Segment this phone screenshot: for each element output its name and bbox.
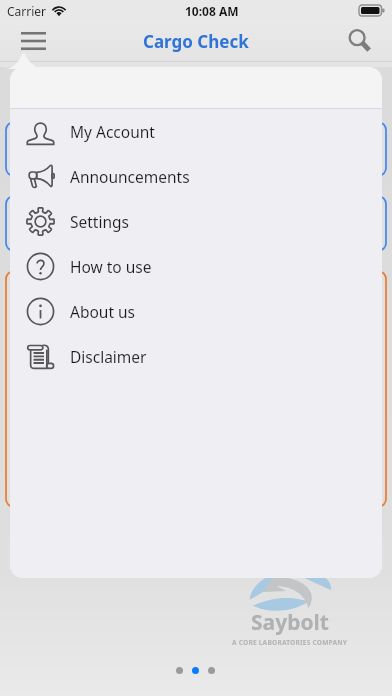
staticText: Cargo Check — [143, 30, 249, 53]
staticText: Carrier — [7, 3, 47, 19]
staticText: A CORE LABORATORIES COMPANY — [232, 638, 348, 647]
button[interactable]: Menu — [9, 24, 58, 58]
staticText: Saybolt — [251, 608, 329, 637]
staticText: Announcements — [70, 166, 190, 187]
button[interactable]: Disclaimer — [10, 334, 382, 379]
staticText: About us — [70, 301, 136, 322]
staticText: Disclaimer — [70, 346, 147, 367]
button[interactable]: About us — [10, 289, 382, 334]
button[interactable]: How to use — [10, 244, 382, 289]
button[interactable]: Settings — [10, 199, 382, 244]
staticText: Settings — [70, 211, 129, 232]
staticText: How to use — [70, 256, 152, 277]
button[interactable]: Announcements — [10, 154, 382, 199]
staticText: 10:08 AM — [185, 3, 239, 19]
button[interactable]: My Account — [10, 109, 382, 154]
button[interactable]: Search — [340, 24, 386, 58]
staticText: My Account — [70, 121, 155, 142]
